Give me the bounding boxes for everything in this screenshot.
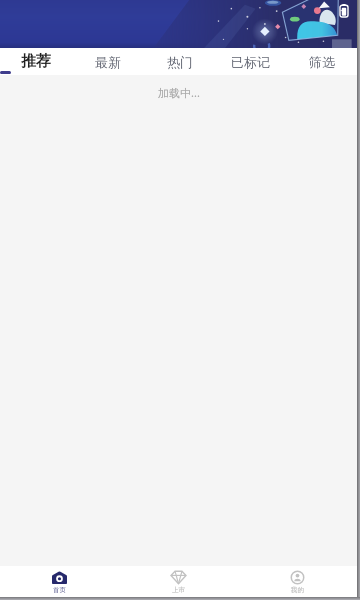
button[interactable]: Profile — [238, 566, 357, 597]
button[interactable]: 已标记 — [215, 48, 286, 75]
staticText: 加载中... — [158, 85, 200, 100]
button[interactable]: Listings — [119, 566, 238, 597]
staticText: 我的 — [291, 586, 304, 594]
staticText: 推荐 — [21, 52, 51, 71]
staticText: 筛选 — [309, 54, 335, 70]
button[interactable]: Home — [0, 566, 119, 597]
staticText: 首页 — [53, 586, 66, 594]
staticText: 最新 — [95, 54, 121, 70]
button[interactable]: 推荐 — [0, 48, 72, 75]
staticText: 已标记 — [231, 54, 270, 70]
staticText: 上市 — [172, 586, 185, 594]
button[interactable]: 最新 — [72, 48, 144, 75]
button[interactable]: 热门 — [144, 48, 215, 75]
staticText: 热门 — [167, 54, 193, 70]
button[interactable]: 筛选 — [286, 48, 357, 75]
